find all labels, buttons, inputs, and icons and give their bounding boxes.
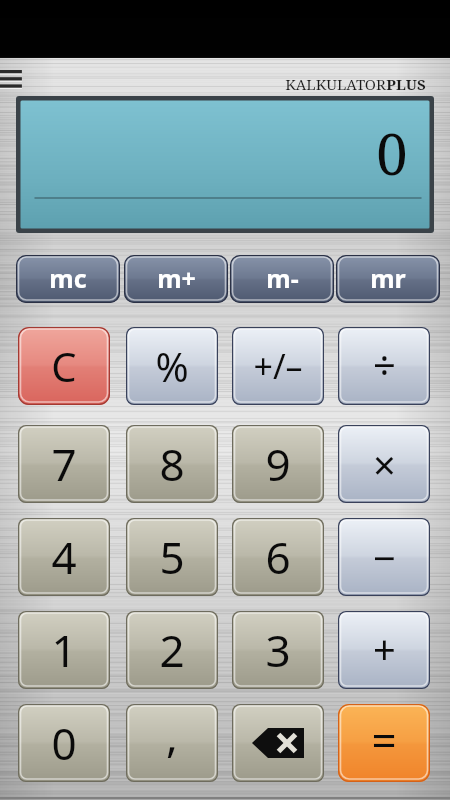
button[interactable]: mr [336,255,440,303]
button[interactable]: , [126,704,218,782]
button[interactable]: Backspace [232,704,324,782]
staticText: ÷ [373,337,396,391]
staticText: 3 [265,620,291,680]
staticText: PLUS [386,74,426,94]
button[interactable]: % [126,327,218,405]
staticText: 5 [159,527,185,587]
staticText: 4 [51,527,77,587]
staticText: = [371,710,397,770]
button[interactable]: 7 [18,425,110,503]
button[interactable]: +/– [232,327,324,405]
button[interactable]: Menu [0,68,28,90]
button[interactable]: 3 [232,611,324,689]
staticText: +/– [253,343,303,389]
button[interactable]: 6 [232,518,324,596]
staticText: 6 [265,527,291,587]
button[interactable]: + [338,611,430,689]
button[interactable]: 4 [18,518,110,596]
button[interactable]: 0 [18,704,110,782]
button[interactable]: mc [16,255,120,303]
staticText: , [166,705,178,765]
staticText: % [155,339,189,393]
button[interactable]: 5 [126,518,218,596]
button[interactable]: = [338,704,430,782]
staticText: + [373,621,396,675]
staticText: KALKULATOR [285,74,386,94]
button[interactable]: 1 [18,611,110,689]
button[interactable]: m+ [124,255,228,303]
button[interactable]: 2 [126,611,218,689]
button[interactable]: ÷ [338,327,430,405]
staticText: m- [266,261,299,295]
button[interactable]: 9 [232,425,324,503]
button[interactable]: m- [230,255,334,303]
staticText: 1 [51,620,77,680]
staticText: 9 [265,434,291,494]
button[interactable]: − [338,518,430,596]
staticText: 0 [376,115,408,191]
staticText: 8 [159,434,185,494]
staticText: 2 [159,620,185,680]
staticText: 0 [51,713,77,773]
staticText: 7 [51,434,77,494]
staticText: × [373,437,396,491]
staticText: C [51,339,77,393]
button[interactable]: × [338,425,430,503]
staticText: − [373,530,396,584]
staticText: mr [370,261,406,295]
button[interactable]: C [18,327,110,405]
staticText: mc [49,261,87,295]
staticText: m+ [157,261,196,295]
button[interactable]: 8 [126,425,218,503]
